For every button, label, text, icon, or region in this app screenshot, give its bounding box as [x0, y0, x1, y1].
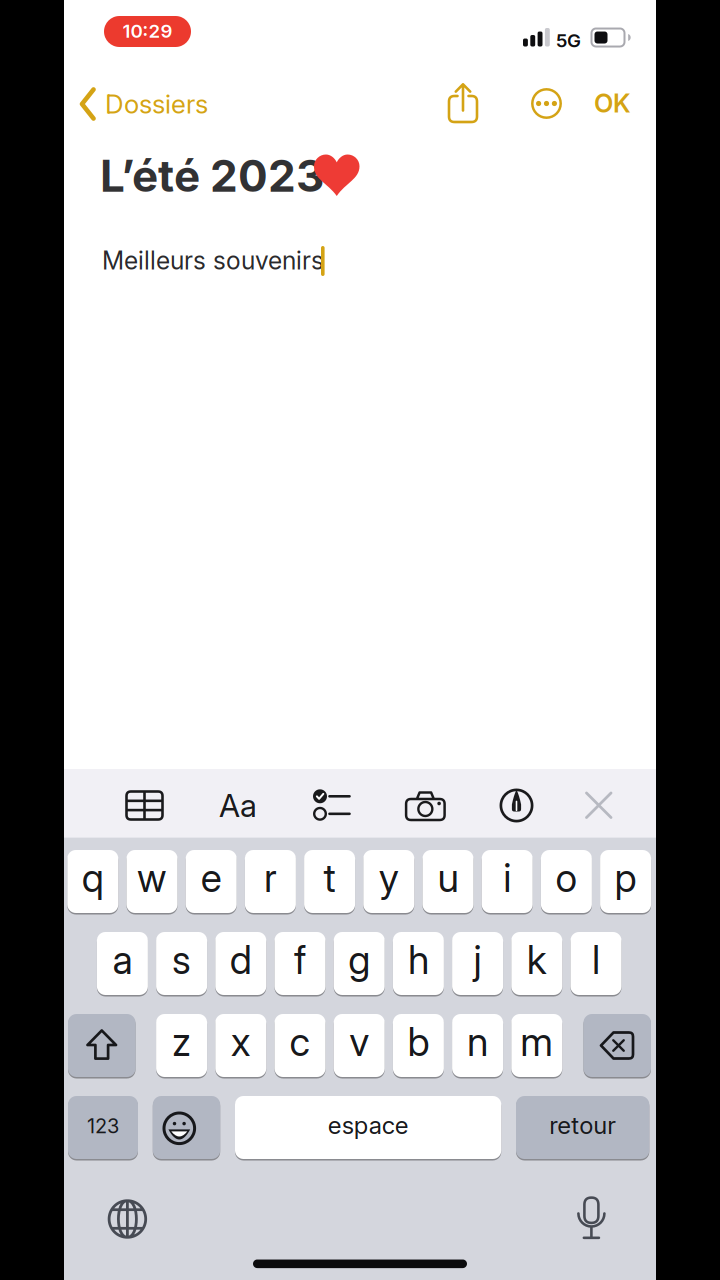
button[interactable]: 10:29 — [104, 16, 191, 47]
button[interactable]: e — [186, 850, 237, 913]
button[interactable]: y — [363, 850, 414, 913]
staticText: Aa — [219, 786, 257, 824]
staticText: x — [231, 1019, 251, 1065]
button[interactable]: Dossiers — [79, 87, 208, 121]
staticText: Meilleurs souvenirs — [102, 245, 324, 275]
button[interactable] — [68, 1014, 135, 1077]
button[interactable]: t — [304, 850, 355, 913]
button[interactable]: c — [274, 1014, 325, 1077]
staticText: b — [407, 1019, 429, 1065]
button[interactable]: b — [393, 1014, 444, 1077]
staticText: d — [230, 937, 252, 983]
staticText: j — [474, 937, 482, 983]
button[interactable]: o — [541, 850, 592, 913]
staticText: 123 — [87, 1114, 119, 1138]
button[interactable]: f — [274, 932, 325, 995]
button[interactable]: u — [422, 850, 473, 913]
button[interactable]: j — [452, 932, 503, 995]
staticText: 10:29 — [122, 20, 172, 42]
button[interactable]: h — [393, 932, 444, 995]
staticText: retour — [549, 1111, 616, 1140]
staticText: o — [555, 855, 577, 901]
staticText: h — [408, 937, 429, 983]
button[interactable] — [571, 777, 627, 833]
button[interactable]: w — [126, 850, 177, 913]
staticText: z — [172, 1019, 191, 1065]
button[interactable] — [153, 1096, 220, 1159]
button[interactable] — [583, 1014, 651, 1077]
staticText: e — [201, 855, 222, 901]
button[interactable] — [488, 777, 544, 833]
button[interactable]: l — [570, 932, 621, 995]
staticText: u — [437, 855, 458, 901]
staticText: y — [379, 855, 399, 901]
button[interactable]: d — [215, 932, 266, 995]
staticText: OK — [594, 88, 631, 119]
button[interactable]: x — [215, 1014, 266, 1077]
staticText: p — [615, 855, 637, 901]
button[interactable]: p — [600, 850, 651, 913]
staticText: l — [592, 937, 600, 983]
button[interactable]: r — [245, 850, 296, 913]
staticText: Dossiers — [105, 88, 208, 120]
button[interactable]: m — [511, 1014, 562, 1077]
staticText: v — [349, 1019, 369, 1065]
staticText: q — [82, 855, 104, 901]
staticText: f — [294, 937, 306, 983]
button[interactable] — [116, 777, 172, 833]
staticText: t — [324, 855, 336, 901]
button[interactable]: v — [334, 1014, 385, 1077]
staticText: 5G — [556, 29, 581, 52]
button[interactable]: Aa — [210, 777, 266, 833]
staticText: w — [137, 855, 167, 901]
button[interactable]: espace — [235, 1096, 501, 1159]
staticText: g — [348, 937, 370, 983]
staticText: m — [520, 1019, 553, 1065]
button[interactable]: s — [156, 932, 207, 995]
button[interactable]: n — [452, 1014, 503, 1077]
button[interactable]: q — [67, 850, 118, 913]
button[interactable]: OK — [594, 88, 631, 119]
button[interactable]: z — [156, 1014, 207, 1077]
button[interactable]: a — [97, 932, 148, 995]
staticText: i — [503, 855, 511, 901]
button[interactable] — [530, 87, 563, 120]
staticText: k — [527, 937, 547, 983]
staticText: espace — [328, 1111, 409, 1140]
button[interactable]: retour — [516, 1096, 649, 1159]
staticText: s — [172, 937, 191, 983]
button[interactable]: i — [482, 850, 533, 913]
staticText: n — [467, 1019, 488, 1065]
button[interactable] — [103, 1195, 151, 1243]
staticText: r — [264, 855, 277, 901]
button[interactable] — [567, 1194, 615, 1242]
button[interactable] — [398, 777, 454, 833]
staticText: a — [112, 937, 132, 983]
button[interactable]: g — [334, 932, 385, 995]
button[interactable]: k — [511, 932, 562, 995]
staticText: c — [289, 1019, 310, 1065]
button[interactable] — [446, 81, 480, 125]
button[interactable] — [303, 777, 359, 833]
button[interactable]: 123 — [68, 1096, 138, 1159]
staticText: L’été 2023 — [100, 149, 324, 202]
